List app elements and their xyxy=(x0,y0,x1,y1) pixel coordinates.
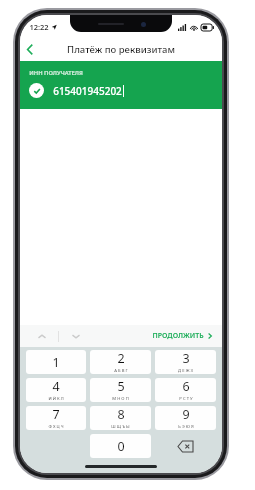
staticText: 2 xyxy=(117,350,125,367)
staticText: 8 xyxy=(117,406,125,423)
button[interactable]: 5 xyxy=(90,378,151,402)
button[interactable]: 7 xyxy=(26,406,86,430)
staticText: Ф Х Ц Ч xyxy=(48,424,64,430)
button[interactable]: 1 xyxy=(26,350,86,374)
button[interactable]: 8 xyxy=(90,406,151,430)
staticText: 5 xyxy=(117,378,125,395)
staticText: 3 xyxy=(182,350,190,367)
button[interactable]: ПРОДОЛЖИТЬ xyxy=(152,331,212,341)
staticText: Ш Щ Ъ Ы xyxy=(111,424,130,430)
staticText: А Б В Г xyxy=(114,368,128,374)
button[interactable]: Back xyxy=(20,39,40,59)
staticText: 9 xyxy=(182,406,190,423)
staticText: 7 xyxy=(52,406,60,423)
button[interactable]: 6 xyxy=(155,378,216,402)
button[interactable]: ИНН ПОЛУЧАТЕЛЯ xyxy=(20,61,222,109)
button[interactable]: 9 xyxy=(155,406,216,430)
staticText: М Н О П xyxy=(112,396,129,402)
button[interactable]: 0 xyxy=(90,434,151,458)
staticText: Платёж по реквизитам xyxy=(67,43,175,56)
staticText: И Й К Л xyxy=(48,396,64,402)
button[interactable]: Delete xyxy=(153,434,218,458)
staticText: Д Е Ж З xyxy=(178,368,193,374)
staticText: 12:22 xyxy=(29,22,49,32)
button[interactable]: Previous field xyxy=(34,328,50,344)
button[interactable]: Next field xyxy=(68,328,84,344)
button[interactable]: 4 xyxy=(26,378,86,402)
staticText: 4 xyxy=(52,378,60,395)
staticText: 615401945202 xyxy=(53,84,122,98)
staticText: 0 xyxy=(117,438,125,455)
staticText: 6 xyxy=(182,378,190,395)
button[interactable]: 2 xyxy=(90,350,151,374)
staticText: ПРОДОЛЖИТЬ xyxy=(152,331,204,341)
staticText: Ь Э Ю Я xyxy=(178,424,194,430)
staticText: Р С Т У xyxy=(179,396,193,402)
staticText: 1 xyxy=(52,354,60,371)
staticText: ИНН ПОЛУЧАТЕЛЯ xyxy=(29,69,83,77)
button[interactable]: 3 xyxy=(155,350,216,374)
